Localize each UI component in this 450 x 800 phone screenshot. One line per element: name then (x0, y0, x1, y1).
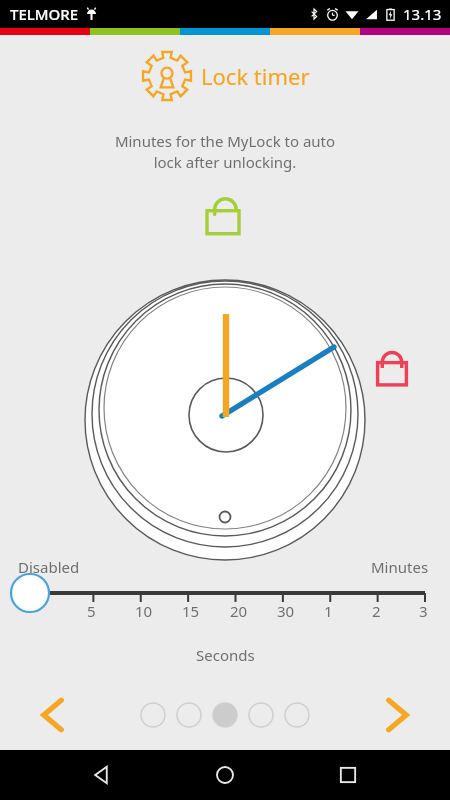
button[interactable]: Page 4 (248, 702, 274, 728)
staticText: Lock timer (201, 61, 310, 91)
staticText: Minutes (371, 557, 429, 577)
button[interactable]: Next (374, 692, 420, 738)
other: Locked (374, 345, 410, 387)
staticText: 20 (230, 601, 248, 621)
button[interactable]: Page 3 (212, 702, 238, 728)
button[interactable] (0, 579, 450, 619)
button[interactable]: Recents (331, 758, 365, 792)
staticText: 5 (87, 601, 96, 621)
staticText: Disabled (18, 557, 80, 577)
button[interactable]: Page 5 (284, 702, 310, 728)
button[interactable]: Page 2 (176, 702, 202, 728)
button[interactable]: Previous (30, 692, 76, 738)
staticText: TELMORE (10, 4, 79, 24)
other: Unlocked (203, 190, 243, 236)
button[interactable]: Page 1 (140, 702, 166, 728)
staticText: Minutes for the MyLock to auto lock afte… (75, 131, 375, 173)
staticText: 10 (135, 601, 153, 621)
button[interactable]: Lock timer (141, 50, 310, 102)
staticText: 15 (182, 601, 200, 621)
staticText: Seconds (196, 645, 255, 665)
staticText: 1 (324, 601, 333, 621)
button[interactable]: Timer slider (9, 572, 51, 614)
staticText: 2 (372, 601, 381, 621)
staticText: 3 (419, 601, 428, 621)
button[interactable]: Back (85, 758, 119, 792)
button[interactable] (80, 242, 370, 542)
button[interactable]: Home (208, 758, 242, 792)
staticText: 30 (277, 601, 295, 621)
staticText: 13.13 (403, 4, 442, 24)
